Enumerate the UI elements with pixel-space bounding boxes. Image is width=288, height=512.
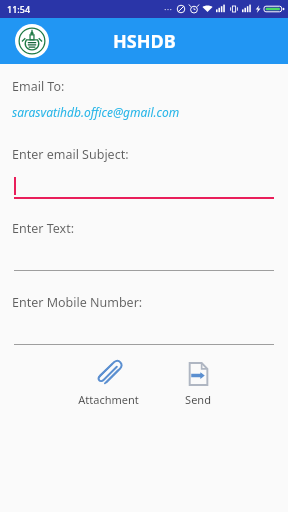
staticText: 11:54 [7,3,31,15]
staticText: Send [185,392,211,407]
staticText: Enter Mobile Number: [12,294,143,311]
button[interactable]: App logo [15,24,49,58]
staticText: HSHDB [113,29,176,54]
staticText: Attachment [78,392,139,407]
staticText: Enter Text: [12,220,75,237]
button[interactable] [14,253,274,271]
staticText: Email To: [12,78,65,95]
staticText: Enter email Subject: [12,146,129,163]
button[interactable] [14,175,274,199]
button[interactable] [14,327,274,345]
button[interactable]: Send [175,357,221,411]
button[interactable]: Attachment [68,357,149,411]
button[interactable]: sarasvatihdb.office@gmail.com [12,104,180,120]
